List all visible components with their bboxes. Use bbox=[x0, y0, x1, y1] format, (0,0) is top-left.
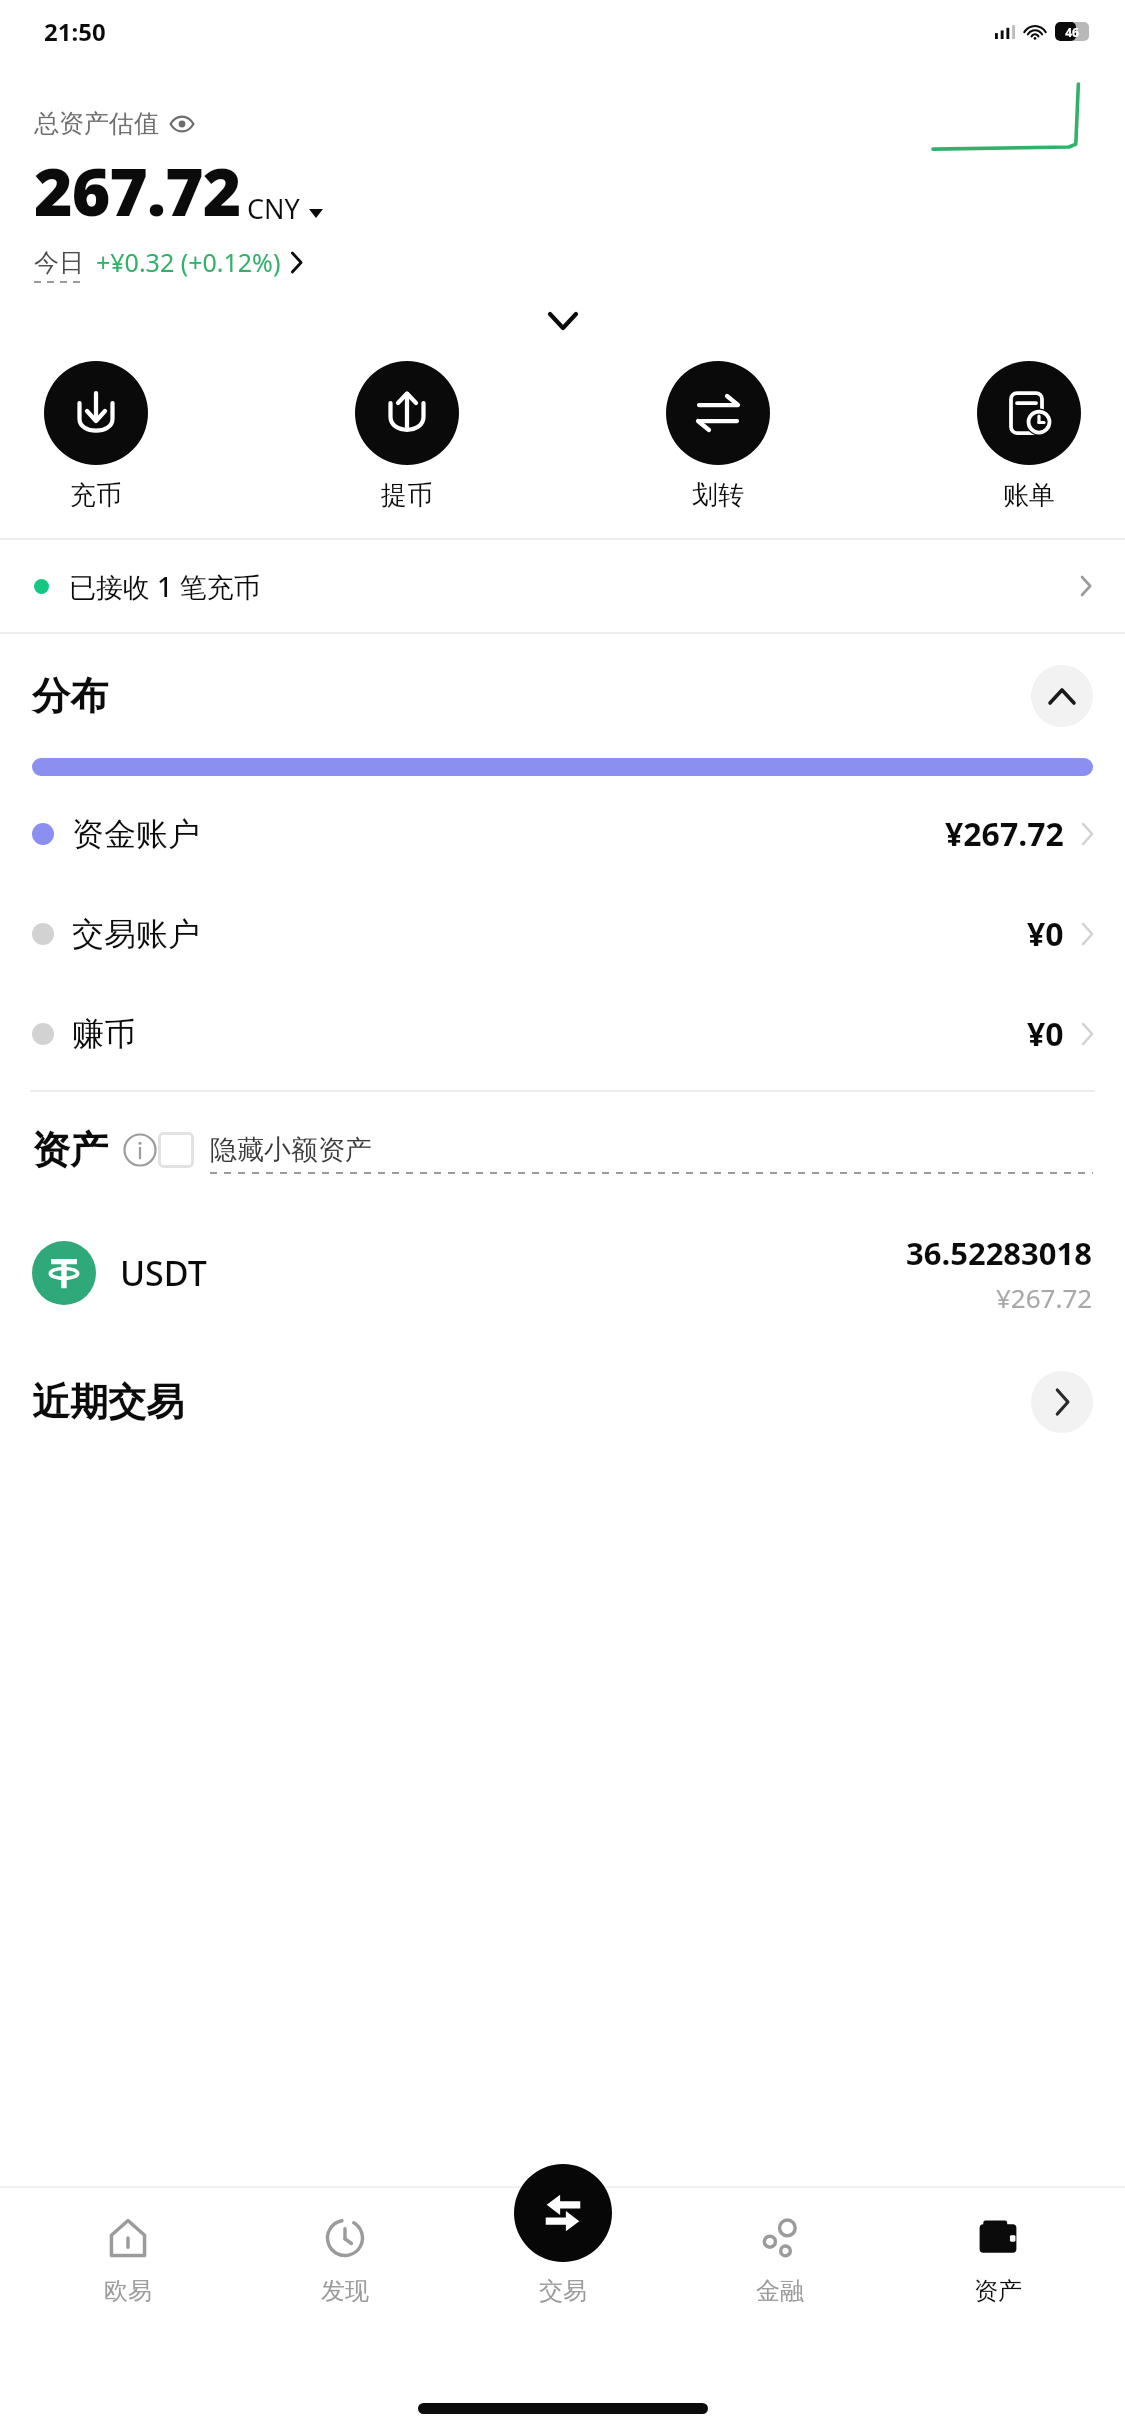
staticText: 赚币 bbox=[72, 1014, 136, 1054]
staticText: 资产 bbox=[974, 2276, 1022, 2306]
staticText: 近期交易 bbox=[32, 1378, 184, 1426]
button[interactable]: Expand bbox=[537, 295, 589, 347]
staticText: 交易 bbox=[539, 2276, 587, 2306]
button[interactable]: 赚币 bbox=[0, 984, 1125, 1084]
button[interactable]: 提币 bbox=[351, 361, 463, 512]
staticText: 36.52283018 bbox=[906, 1232, 1093, 1274]
staticText: 充币 bbox=[70, 479, 122, 512]
button[interactable]: 今日 bbox=[34, 245, 302, 279]
staticText: ¥267.72 bbox=[945, 812, 1064, 856]
staticText: 隐藏小额资产 bbox=[210, 1133, 372, 1167]
staticText: ¥267.72 bbox=[996, 1280, 1093, 1315]
staticText: 46 bbox=[1065, 24, 1079, 40]
button[interactable]: 交易 bbox=[473, 2186, 653, 2306]
staticText: ¥0 bbox=[1027, 1012, 1064, 1056]
button[interactable]: 充币 bbox=[40, 361, 152, 512]
button[interactable]: 总资产估值 bbox=[34, 108, 195, 139]
button[interactable]: Assets info bbox=[122, 1132, 158, 1168]
staticText: 已接收 1 笔充币 bbox=[69, 568, 261, 605]
staticText: 267.72 bbox=[34, 145, 241, 235]
staticText: 资产 bbox=[32, 1126, 108, 1174]
button[interactable]: 隐藏小额资产 bbox=[158, 1132, 1093, 1168]
button[interactable]: 交易 Trade bbox=[514, 2164, 612, 2262]
staticText: +¥0.32 (+0.12%) bbox=[96, 245, 281, 279]
staticText: 提币 bbox=[381, 479, 433, 512]
staticText: 总资产估值 bbox=[34, 108, 159, 139]
button[interactable]: 欧易 bbox=[38, 2186, 218, 2306]
staticText: 交易账户 bbox=[72, 914, 200, 954]
staticText: USDT bbox=[120, 1250, 207, 1296]
button[interactable]: 已接收 1 笔充币 bbox=[0, 540, 1125, 632]
other: Toggle balance visibility bbox=[169, 111, 195, 137]
staticText: CNY bbox=[247, 190, 300, 227]
button[interactable]: More recent transactions bbox=[1031, 1371, 1093, 1433]
button[interactable]: 资产 bbox=[908, 2186, 1088, 2306]
button[interactable]: 发现 bbox=[255, 2186, 435, 2306]
staticText: 发现 bbox=[321, 2276, 369, 2306]
button[interactable]: 267.72 bbox=[34, 145, 323, 235]
button[interactable]: 交易账户 bbox=[0, 884, 1125, 984]
staticText: 划转 bbox=[692, 479, 744, 512]
staticText: 金融 bbox=[756, 2276, 804, 2306]
staticText: 欧易 bbox=[104, 2276, 152, 2306]
button[interactable]: Collapse distribution bbox=[1031, 665, 1093, 727]
staticText: ¥0 bbox=[1027, 912, 1064, 956]
staticText: 今日 bbox=[34, 247, 84, 278]
staticText: 资金账户 bbox=[72, 814, 200, 854]
staticText: 21:50 bbox=[44, 15, 106, 48]
staticText: 分布 bbox=[32, 672, 108, 720]
button[interactable]: 金融 bbox=[690, 2186, 870, 2306]
button[interactable]: 账单 bbox=[973, 361, 1085, 512]
staticText: 账单 bbox=[1003, 479, 1055, 512]
button[interactable]: 资金账户 bbox=[0, 784, 1125, 884]
button[interactable]: 划转 bbox=[662, 361, 774, 512]
button[interactable]: USDT bbox=[0, 1208, 1125, 1338]
